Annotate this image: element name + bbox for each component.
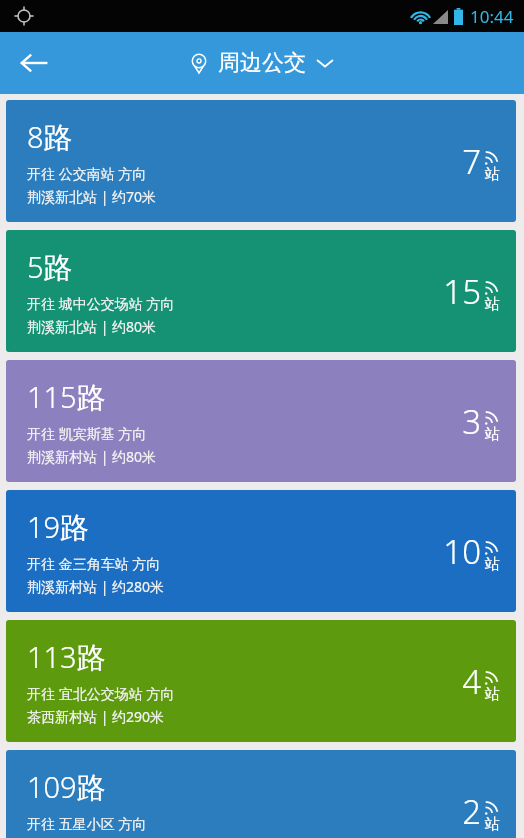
staticText: 113路 [27,637,106,677]
staticText: 115路 [27,377,106,417]
staticText: 15 [443,269,481,314]
staticText: 2 [462,789,481,834]
staticText: 站 [485,425,500,444]
button[interactable]: 8路 [6,100,516,222]
staticText: 109路 [27,767,106,807]
staticText: 荆溪新村站 | 约80米 [27,447,157,466]
staticText: 站 [485,555,500,574]
button[interactable]: 113路 [6,620,516,742]
staticText: 5路 [27,247,73,287]
staticText: 荆溪新村站 | 约280米 [27,577,165,596]
staticText: 荆溪新北站 | 约70米 [27,187,157,206]
button[interactable]: 109路 [6,750,516,838]
staticText: 开往 宜北公交场站 方向 [27,684,175,703]
staticText: 站 [485,815,500,834]
button[interactable]: 5路 [6,230,516,352]
staticText: 站 [485,295,500,314]
staticText: 开往 公交南站 方向 [27,164,147,183]
staticText: 7 [462,139,481,184]
staticText: 荆溪新北站 | 约80米 [27,317,157,336]
staticText: 10 [443,529,481,574]
staticText: 开往 城中公交场站 方向 [27,294,175,313]
button[interactable]: Back [10,39,58,87]
staticText: 茶西新村站 | 约290米 [27,707,165,726]
staticText: 10:44 [470,5,514,28]
button[interactable]: 19路 [6,490,516,612]
staticText: 开往 金三角车站 方向 [27,554,161,573]
button[interactable]: 115路 [6,360,516,482]
staticText: 站 [485,165,500,184]
staticText: 开往 凯宾斯基 方向 [27,424,147,443]
button[interactable]: 周边公交 [191,49,333,77]
staticText: 19路 [27,507,90,547]
staticText: 3 [462,399,481,444]
staticText: 站 [485,685,500,704]
staticText: 8路 [27,117,73,157]
staticText: 4 [462,659,481,704]
staticText: 周边公交 [218,49,306,77]
staticText: 开往 五星小区 方向 [27,814,147,833]
